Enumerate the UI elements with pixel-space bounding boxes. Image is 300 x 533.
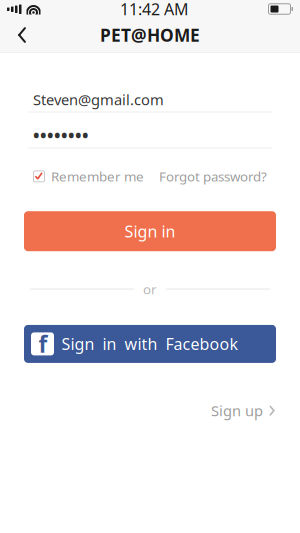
staticText: Sign in with Facebook [61,333,238,354]
staticText: f [38,329,47,359]
staticText: or [143,280,157,298]
staticText: Steven@gmail.com [33,90,164,109]
button[interactable]: Sign in with Facebook [24,325,276,363]
staticText: 11:42 AM [120,0,189,20]
button[interactable]: Back [0,18,44,52]
staticText: PET@HOME [100,23,200,46]
staticText: Sign in [124,221,175,242]
staticText: Remember me [51,167,144,185]
button[interactable]: Sign up [211,401,276,420]
staticText: •••••••• [33,124,89,147]
button[interactable]: Sign in [24,211,276,251]
staticText: Sign up [211,401,263,420]
staticText: Forgot password? [159,167,267,185]
button[interactable]: Forgot password? [159,167,267,185]
button[interactable]: Remember me [33,167,144,185]
